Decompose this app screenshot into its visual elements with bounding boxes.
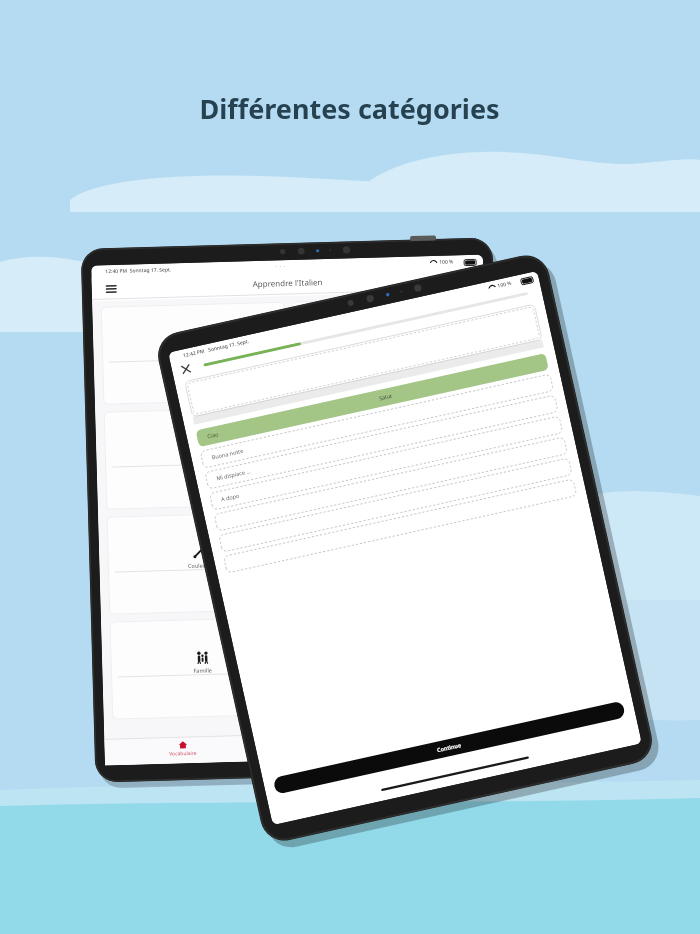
button[interactable]: Différentes catégories app preview: [0, 0, 700, 934]
